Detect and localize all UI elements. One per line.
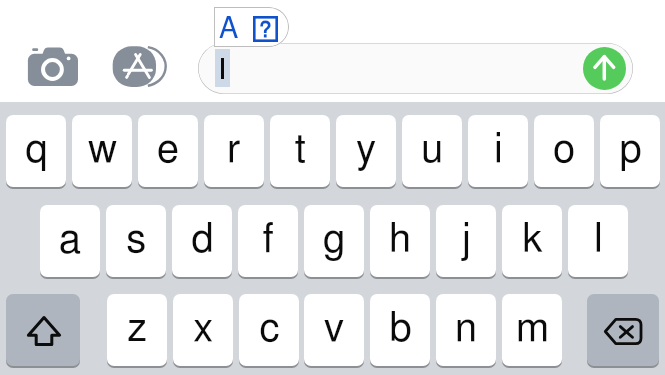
button[interactable]: z — [107, 294, 167, 366]
button[interactable]: u — [402, 115, 462, 187]
button[interactable]: l — [568, 205, 628, 277]
button[interactable]: A — [214, 7, 289, 47]
button[interactable]: Shift — [6, 294, 80, 366]
button[interactable]: g — [304, 205, 364, 277]
staticText: q — [25, 130, 48, 170]
staticText: b — [389, 309, 412, 349]
button[interactable]: t — [270, 115, 330, 187]
staticText: o — [553, 130, 575, 170]
staticText: p — [619, 130, 642, 170]
button[interactable]: Send — [583, 47, 626, 90]
button[interactable]: x — [173, 294, 233, 366]
staticText: d — [191, 220, 214, 260]
button[interactable]: v — [304, 294, 364, 366]
button[interactable]: j — [436, 205, 496, 277]
staticText: l — [594, 220, 603, 260]
button[interactable]: q — [6, 115, 66, 187]
staticText: k — [522, 220, 543, 260]
button[interactable]: Backspace — [587, 294, 659, 366]
staticText: c — [259, 309, 280, 349]
staticText: i — [494, 130, 503, 170]
staticText: m — [516, 309, 549, 349]
button[interactable]: m — [502, 294, 562, 366]
button[interactable]: n — [436, 294, 496, 366]
staticText: j — [461, 220, 471, 260]
button[interactable]: w — [72, 115, 132, 187]
button[interactable]: d — [172, 205, 232, 277]
button[interactable]: r — [204, 115, 264, 187]
button[interactable]: b — [370, 294, 430, 366]
button[interactable]: y — [336, 115, 396, 187]
staticText: r — [227, 130, 241, 170]
staticText: A — [219, 15, 239, 44]
staticText: f — [262, 220, 274, 260]
staticText: ? — [259, 19, 272, 41]
staticText: v — [324, 309, 344, 349]
staticText: x — [193, 309, 213, 349]
button[interactable]: Camera — [22, 42, 82, 92]
staticText: h — [389, 220, 411, 260]
staticText: t — [294, 130, 306, 170]
button[interactable]: App Store — [106, 42, 168, 92]
button[interactable]: c — [239, 294, 299, 366]
button[interactable]: h — [370, 205, 430, 277]
button[interactable]: a — [40, 205, 100, 277]
staticText: z — [127, 309, 147, 349]
button[interactable]: s — [106, 205, 166, 277]
button[interactable]: p — [600, 115, 660, 187]
staticText: n — [455, 309, 477, 349]
staticText: e — [157, 130, 179, 170]
button[interactable]: o — [534, 115, 594, 187]
staticText: y — [356, 130, 376, 170]
button[interactable]: k — [502, 205, 562, 277]
button[interactable]: e — [138, 115, 198, 187]
staticText: s — [126, 220, 146, 260]
staticText: a — [59, 220, 81, 260]
staticText: u — [421, 130, 443, 170]
staticText: g — [323, 220, 345, 260]
staticText: w — [88, 130, 117, 170]
button[interactable]: f — [238, 205, 298, 277]
button[interactable]: i — [468, 115, 528, 187]
